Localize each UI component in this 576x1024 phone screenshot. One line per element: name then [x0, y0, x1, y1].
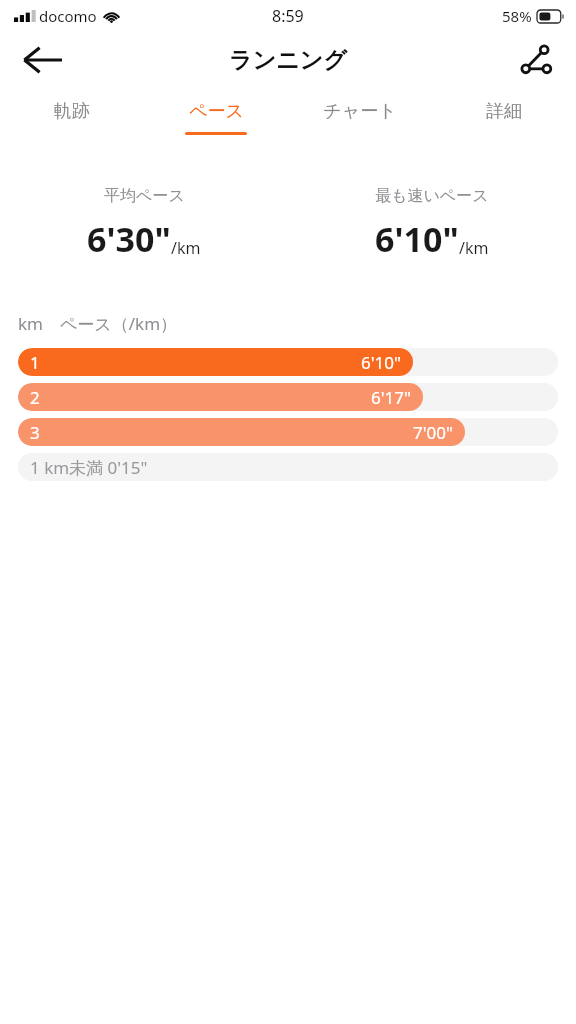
button[interactable]: チャート — [288, 88, 432, 146]
button[interactable]: 詳細 — [432, 88, 576, 146]
staticText: 58% — [502, 6, 532, 26]
staticText: 6'30" — [87, 216, 171, 262]
staticText: /km — [459, 237, 489, 259]
staticText: 最も速いペース — [375, 186, 489, 206]
button[interactable]: 3 — [18, 418, 558, 446]
staticText: 2 — [30, 386, 40, 409]
button[interactable]: 1 — [18, 348, 558, 376]
staticText: チャート — [323, 100, 397, 123]
staticText: 1 km未満 0'15" — [30, 456, 148, 479]
staticText: 平均ペース — [104, 186, 185, 206]
staticText: 詳細 — [486, 100, 522, 123]
button[interactable]: 1 km未満 0'15" — [18, 453, 558, 481]
button[interactable]: 2 — [18, 383, 558, 411]
staticText: 6'17" — [371, 386, 411, 409]
staticText: 1 — [30, 351, 40, 374]
staticText: 8:59 — [272, 5, 304, 27]
staticText: 6'10" — [375, 216, 459, 262]
button[interactable]: ペース — [144, 88, 288, 146]
staticText: ランニング — [229, 46, 347, 75]
staticText: 3 — [30, 421, 40, 444]
staticText: ペース — [189, 100, 244, 123]
staticText: 7'00" — [413, 421, 453, 444]
staticText: /km — [171, 237, 201, 259]
staticText: 6'10" — [361, 351, 401, 374]
staticText: docomo — [39, 6, 97, 26]
staticText: 軌跡 — [54, 100, 90, 123]
staticText: km ペース（/km） — [18, 312, 178, 335]
button[interactable]: Share — [508, 32, 564, 88]
button[interactable]: Back — [14, 32, 70, 88]
button[interactable]: 軌跡 — [0, 88, 144, 146]
